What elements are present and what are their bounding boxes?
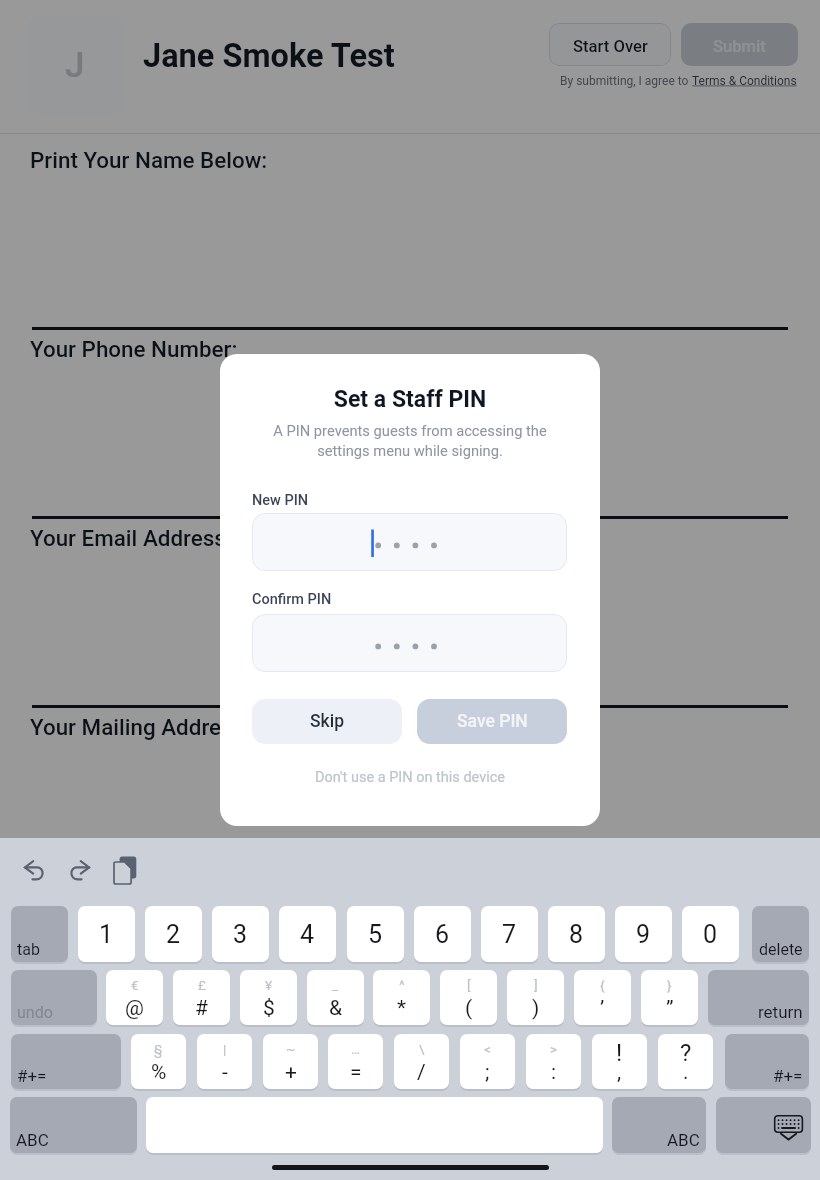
button[interactable]: ? xyxy=(658,1034,713,1089)
button[interactable]: tab xyxy=(11,906,68,962)
staticText: By submitting, I agree to xyxy=(560,74,692,88)
staticText: 1 xyxy=(99,920,114,949)
button[interactable]: Paste xyxy=(114,855,137,885)
button[interactable]: delete xyxy=(752,906,809,962)
staticText: Terms & Conditions xyxy=(692,74,797,88)
button[interactable]: ! xyxy=(592,1034,647,1089)
staticText: ABC xyxy=(16,1130,49,1150)
button[interactable]: Your Mailing Address: xyxy=(0,708,820,897)
button[interactable]: 7 xyxy=(481,906,538,962)
staticText: Your Email Address: xyxy=(30,525,232,551)
button[interactable]: ] xyxy=(507,970,564,1025)
staticText: ’ xyxy=(600,996,605,1021)
button[interactable]: € xyxy=(106,970,163,1025)
staticText: 2 xyxy=(166,920,181,949)
staticText: } xyxy=(667,977,672,993)
button[interactable]: \ xyxy=(394,1034,449,1089)
staticText: Your Mailing Address: xyxy=(30,714,251,740)
button[interactable]: New PIN field xyxy=(252,513,567,571)
button[interactable] xyxy=(716,1097,811,1153)
button[interactable]: ~ xyxy=(263,1034,318,1089)
button[interactable]: Print Your Name Below: xyxy=(0,141,820,330)
button[interactable]: } xyxy=(641,970,698,1025)
staticText: ! xyxy=(616,1039,623,1067)
button[interactable]: Undo xyxy=(24,859,45,880)
staticText: . xyxy=(683,1060,689,1085)
staticText: > xyxy=(550,1041,558,1057)
button[interactable]: Redo xyxy=(69,859,90,880)
staticText: 8 xyxy=(569,920,584,949)
staticText: A PIN prevents guests from accessing the… xyxy=(248,422,572,459)
staticText: / xyxy=(417,1060,426,1085)
button[interactable]: Don't use a PIN on this device xyxy=(220,764,600,790)
button[interactable]: 8 xyxy=(548,906,605,962)
staticText: $ xyxy=(263,996,275,1021)
button[interactable]: 0 xyxy=(682,906,739,962)
button[interactable]: § xyxy=(131,1034,186,1089)
button[interactable]: Submit xyxy=(681,23,798,66)
button[interactable]: [ xyxy=(440,970,497,1025)
button[interactable]: ¥ xyxy=(240,970,297,1025)
staticText: 7 xyxy=(502,920,517,949)
button[interactable]: £ xyxy=(173,970,230,1025)
button[interactable]: _ xyxy=(307,970,364,1025)
staticText: , xyxy=(617,1060,622,1085)
button[interactable]: Save PIN xyxy=(417,699,567,744)
staticText: # xyxy=(195,996,208,1021)
button[interactable]: < xyxy=(460,1034,515,1089)
button[interactable]: Confirm PIN field xyxy=(252,614,567,672)
staticText: ” xyxy=(666,996,674,1021)
button[interactable]: | xyxy=(197,1034,252,1089)
staticText: | xyxy=(223,1041,227,1057)
button[interactable]: 4 xyxy=(279,906,336,962)
button[interactable]: > xyxy=(526,1034,581,1089)
staticText: { xyxy=(600,977,605,993)
staticText: 6 xyxy=(435,920,450,949)
button[interactable]: Your Email Address: xyxy=(0,519,820,708)
staticText: _ xyxy=(332,977,339,993)
button[interactable]: ^ xyxy=(373,970,430,1025)
button[interactable]: #+= xyxy=(11,1034,121,1089)
button[interactable]: Your Phone Number: xyxy=(0,330,820,519)
button[interactable]: Start Over xyxy=(549,23,671,66)
staticText: & xyxy=(329,996,343,1021)
staticText: £ xyxy=(198,977,206,993)
staticText: undo xyxy=(17,1003,53,1022)
staticText: Skip xyxy=(310,711,345,732)
button[interactable]: 9 xyxy=(615,906,672,962)
staticText: Don't use a PIN on this device xyxy=(315,769,506,786)
button[interactable]: 6 xyxy=(414,906,471,962)
staticText: 0 xyxy=(703,920,718,949)
button[interactable]: #+= xyxy=(725,1034,809,1089)
staticText: ; xyxy=(485,1060,490,1085)
staticText: @ xyxy=(125,996,144,1021)
staticText: + xyxy=(285,1060,297,1085)
button[interactable]: { xyxy=(574,970,631,1025)
staticText: Save PIN xyxy=(457,711,528,732)
button[interactable]: … xyxy=(328,1034,383,1089)
staticText: € xyxy=(131,977,139,993)
button[interactable]: undo xyxy=(11,970,97,1025)
staticText: 9 xyxy=(636,920,651,949)
button[interactable]: 2 xyxy=(145,906,202,962)
button[interactable]: ABC xyxy=(10,1097,137,1153)
button[interactable]: Skip xyxy=(252,699,402,744)
button[interactable]: 3 xyxy=(212,906,269,962)
button[interactable]: By submitting, I agree to xyxy=(560,74,797,88)
staticText: J xyxy=(65,45,85,86)
staticText: #+= xyxy=(773,1066,803,1086)
button[interactable]: Profile photo xyxy=(25,16,125,115)
button[interactable]: return xyxy=(708,970,809,1025)
staticText: - xyxy=(222,1060,228,1085)
button[interactable]: 5 xyxy=(347,906,404,962)
staticText: delete xyxy=(759,940,803,959)
staticText: : xyxy=(551,1060,557,1085)
staticText: return xyxy=(758,1002,803,1022)
button[interactable]: ABC xyxy=(612,1097,706,1153)
button[interactable]: 1 xyxy=(78,906,135,962)
staticText: < xyxy=(484,1041,491,1057)
staticText: 4 xyxy=(300,920,315,949)
staticText: = xyxy=(350,1060,362,1085)
staticText: [ xyxy=(467,977,471,993)
